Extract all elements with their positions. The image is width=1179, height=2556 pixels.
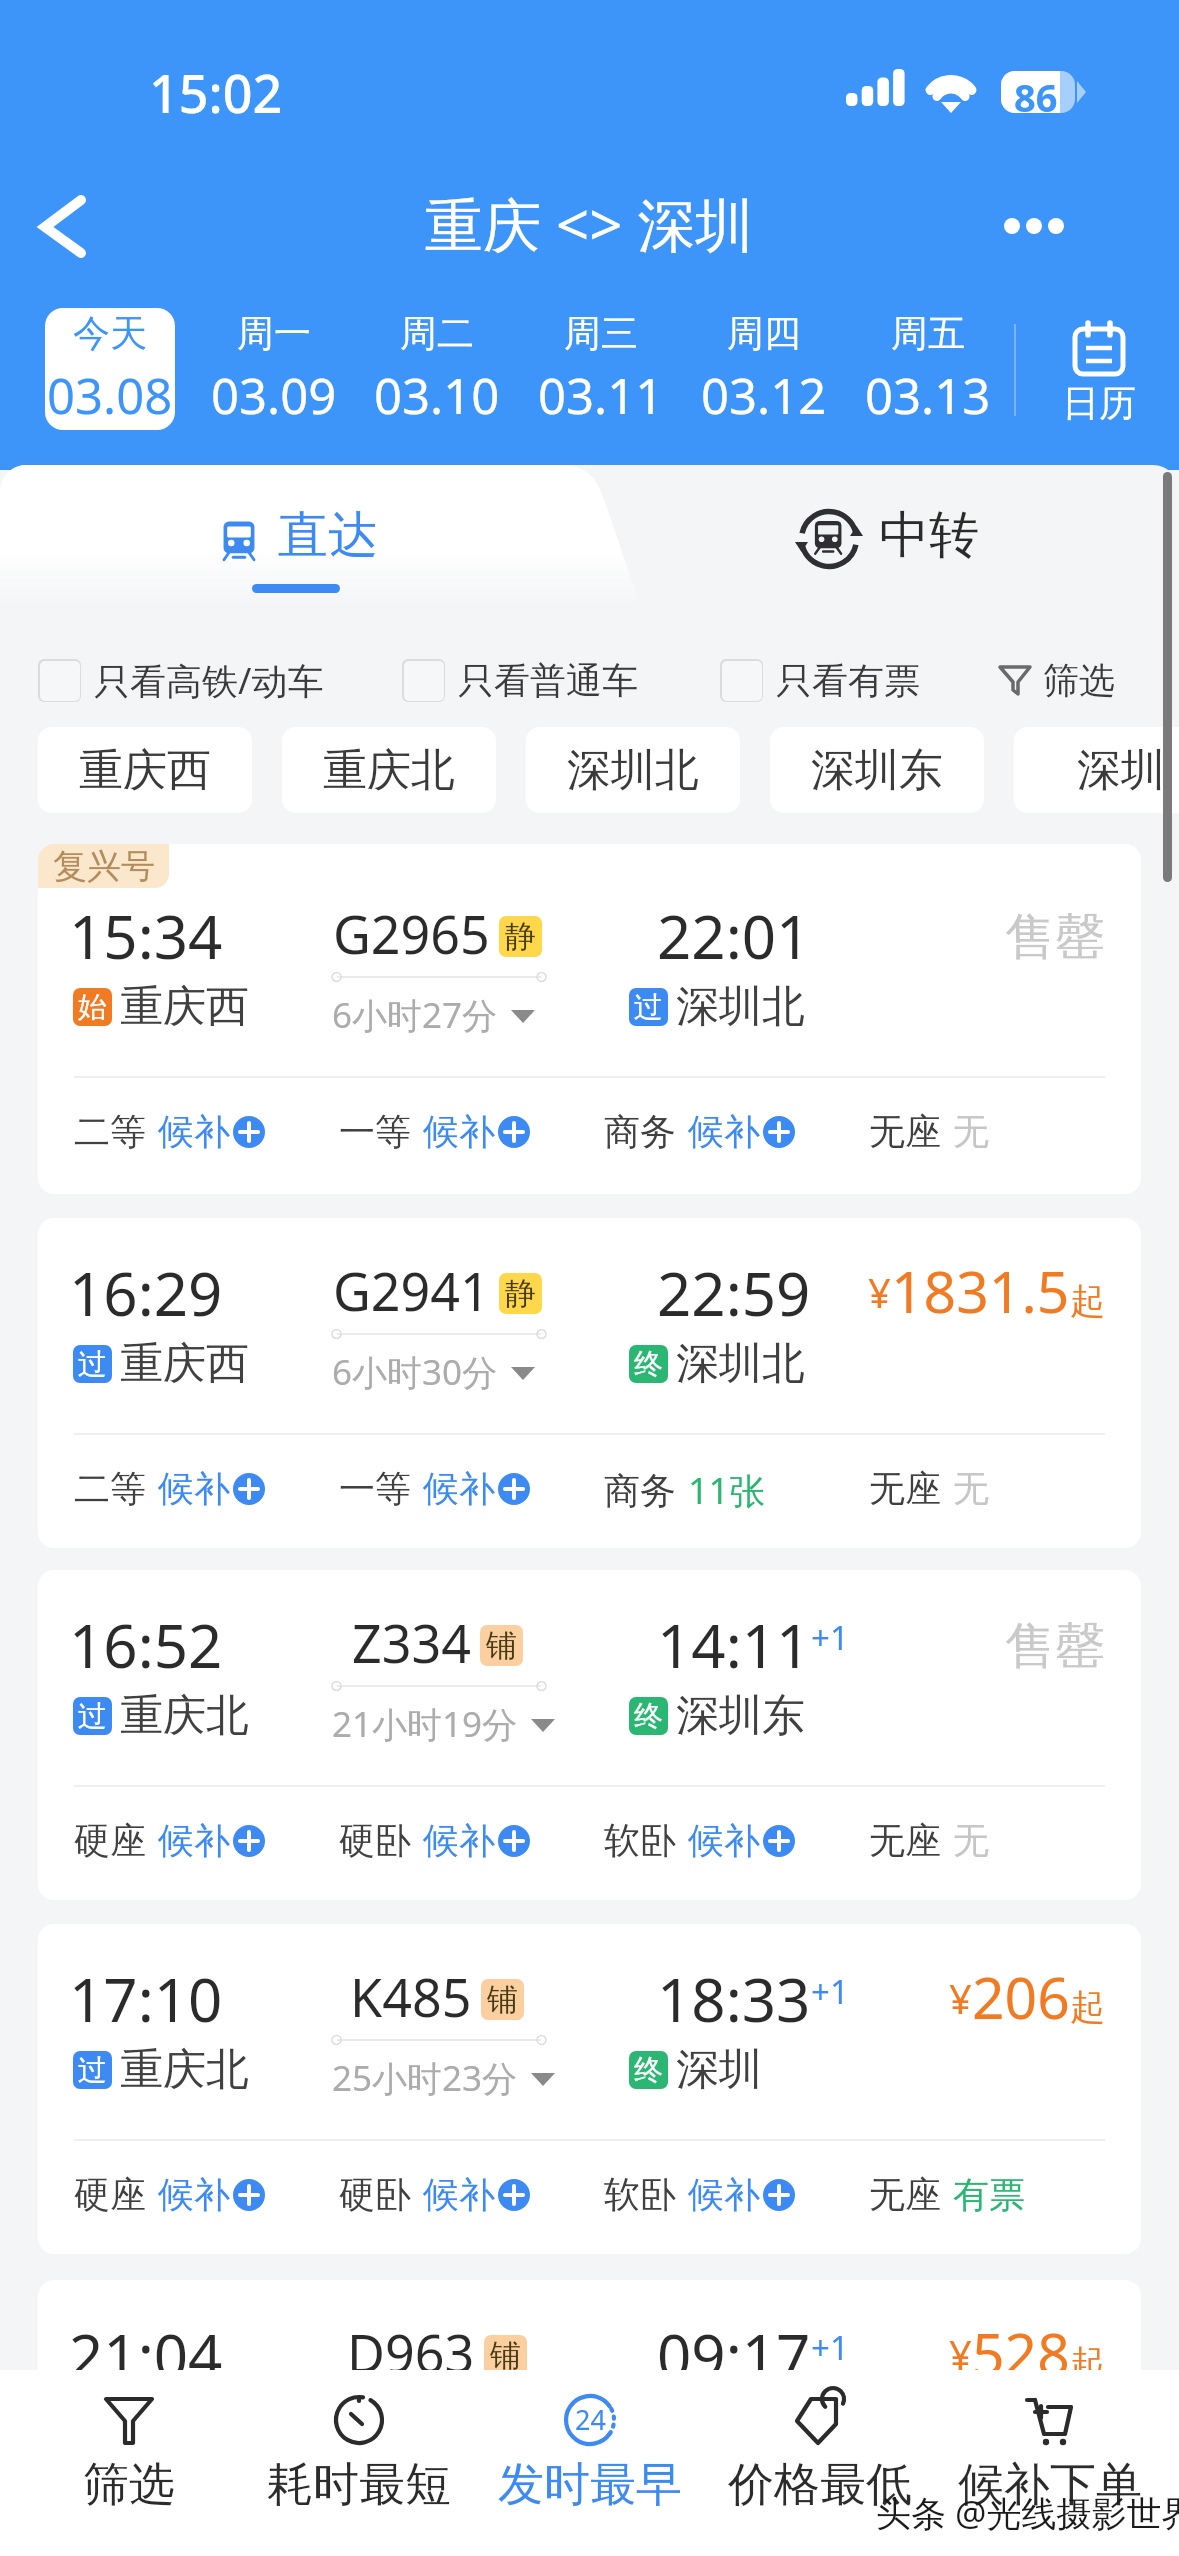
staticText: 软卧 [604, 2172, 676, 2217]
staticText: 无座 [869, 1818, 941, 1863]
staticText: 深圳北 [676, 1337, 805, 1391]
staticText: 深圳北 [676, 980, 805, 1034]
staticText: 二等 [74, 1109, 146, 1154]
staticText: 无 [953, 1466, 989, 1511]
staticText: 21:04 [69, 2314, 223, 2396]
staticText: 终 [634, 1698, 663, 1735]
staticText: 发时最早 [498, 2456, 682, 2514]
staticText: 价格最低 [728, 2456, 912, 2514]
staticText: 候补 [158, 2172, 230, 2217]
staticText: 无座 [869, 2528, 941, 2556]
button[interactable]: 中转 [879, 481, 979, 589]
staticText: 只看普通车 [458, 658, 638, 703]
button[interactable]: 耗时最短 [241, 2370, 477, 2556]
button[interactable]: 直达 [278, 481, 378, 589]
button[interactable]: 周一 [209, 308, 339, 430]
button[interactable]: 深圳 [1014, 727, 1179, 813]
button[interactable]: 周四 [699, 308, 829, 430]
staticText: 日历 [1062, 380, 1136, 427]
staticText: 深圳东 [811, 743, 943, 798]
staticText: 无座 [869, 1109, 941, 1154]
staticText: 周四 [727, 310, 801, 357]
staticText: 17:10 [69, 1958, 223, 2040]
staticText: 商务 [604, 1109, 676, 1154]
button[interactable]: 复兴号 [38, 844, 1141, 1194]
staticText: 只看高铁/动车 [94, 656, 324, 705]
staticText: 15:02 [149, 57, 283, 128]
button[interactable]: 只看有票 [720, 640, 920, 720]
button[interactable]: 16:52 [38, 1570, 1141, 1900]
button[interactable]: 重庆西 [38, 727, 252, 813]
button[interactable]: 日历 [1034, 314, 1164, 432]
staticText: 12小时13分 [332, 2410, 518, 2458]
staticText: 深圳 [676, 2043, 762, 2097]
staticText: 无 [953, 1109, 989, 1154]
button[interactable]: 价格最低 [702, 2370, 938, 2556]
staticText: 候补 [158, 1466, 230, 1511]
staticText: K485 [350, 1961, 472, 2032]
button[interactable]: 周三 [536, 308, 666, 430]
staticText: 静 [505, 1274, 536, 1313]
staticText: 528 [972, 2314, 1070, 2392]
staticText: 过 [78, 2052, 107, 2089]
staticText: 铺 [487, 1980, 518, 2019]
button[interactable]: 周五 [863, 308, 993, 430]
button[interactable]: 深圳东 [770, 727, 984, 813]
staticText: 深圳北 [567, 743, 699, 798]
staticText: 无 [953, 2528, 989, 2556]
staticText: 直达 [278, 504, 378, 567]
button[interactable]: 16:29 [38, 1218, 1141, 1548]
staticText: 筛选 [83, 2456, 175, 2514]
staticText: 筛选 [1043, 658, 1115, 703]
button[interactable]: 深圳北 [526, 727, 740, 813]
staticText: 16:52 [69, 1604, 223, 1686]
staticText: 静 [505, 917, 536, 956]
button[interactable]: 筛选 [997, 640, 1115, 720]
button[interactable]: Back [18, 172, 114, 268]
staticText: 候补下单 [958, 2456, 1142, 2514]
staticText: 重庆北 [120, 1689, 249, 1743]
button[interactable] [219, 517, 259, 565]
staticText: 耗时最短 [267, 2456, 451, 2514]
button[interactable]: More options [995, 178, 1073, 256]
button[interactable]: 24 [472, 2370, 708, 2556]
button[interactable]: 只看普通车 [402, 640, 638, 720]
staticText: 03.10 [374, 362, 500, 429]
button[interactable]: 只看高铁/动车 [38, 640, 324, 720]
button[interactable]: 周二 [372, 308, 502, 430]
button[interactable]: 今天 [45, 308, 175, 430]
button[interactable]: 筛选 [11, 2370, 247, 2556]
button[interactable]: 17:10 [38, 1924, 1141, 2254]
staticText: 21小时19分 [332, 1700, 518, 1748]
staticText: 二等 [74, 1466, 146, 1511]
staticText: 候补 [158, 1818, 230, 1863]
staticText: 25小时23分 [332, 2054, 518, 2102]
staticText: 复兴号 [53, 845, 155, 888]
staticText: 86 [1014, 71, 1058, 123]
staticText: 无座 [869, 1466, 941, 1511]
staticText: 重庆北 [120, 2399, 249, 2453]
staticText: +1 [811, 1615, 849, 1660]
staticText: 1831.5 [891, 1252, 1070, 1330]
staticText: 商务 [604, 1468, 676, 1513]
staticText: 重庆西 [79, 743, 211, 798]
staticText: 15:34 [69, 895, 223, 977]
staticText: ¥ [949, 1971, 972, 2025]
button[interactable]: 重庆北 [282, 727, 496, 813]
staticText: 6小时30分 [332, 1348, 498, 1396]
staticText: 11张 [688, 1466, 766, 1515]
staticText: 周一 [237, 310, 311, 357]
staticText: 14:11 [657, 1604, 811, 1686]
button[interactable]: 21:04 [38, 2280, 1141, 2556]
staticText: 22:59 [657, 1252, 811, 1334]
staticText: 深圳 [1077, 743, 1165, 798]
staticText: 候补 [688, 1109, 760, 1154]
staticText: D963 [347, 2317, 475, 2388]
button[interactable]: 候补下单 [932, 2370, 1168, 2556]
staticText: 中转 [879, 504, 979, 567]
staticText: 09:17 [657, 2314, 811, 2396]
staticText: 硬卧 [339, 2172, 411, 2217]
